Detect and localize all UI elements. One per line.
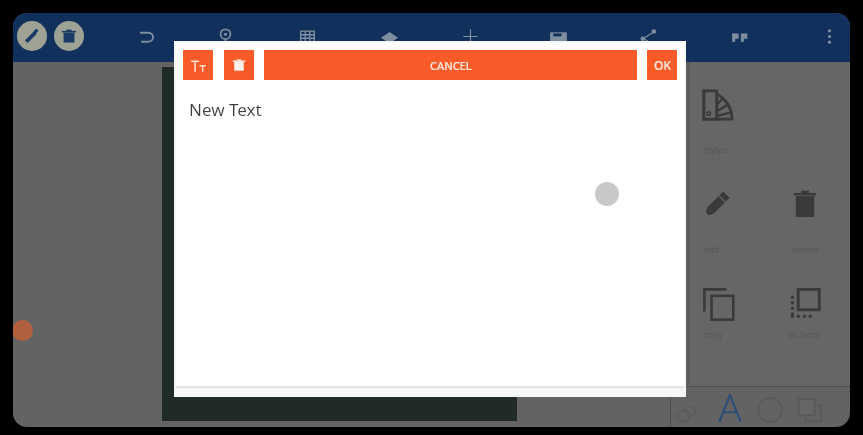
button[interactable]: Share [634,22,662,50]
button[interactable]: CANCEL [264,50,637,80]
staticText: New Text [189,98,262,121]
staticText: copy [703,328,723,340]
staticText: delete [792,243,819,255]
staticText: edit [703,243,720,255]
button[interactable]: Delete tool [54,21,84,51]
button[interactable]: Undo [132,22,160,50]
button[interactable]: Save [544,22,572,50]
staticText: to front [789,328,821,340]
button[interactable]: copy [692,277,776,357]
button[interactable]: Text size [183,50,213,80]
button[interactable]: OK [647,50,677,80]
button[interactable]: delete [781,179,850,259]
staticText: OK [654,57,671,73]
button[interactable]: Text [713,391,747,425]
staticText: styles [703,143,727,155]
button[interactable]: Draw [669,395,705,427]
button[interactable]: Layers [792,392,828,427]
button[interactable]: Grid [293,22,321,50]
button[interactable]: styles [692,79,776,159]
button[interactable]: Quote [726,22,754,50]
button[interactable]: Shape [375,22,403,50]
staticText: CANCEL [430,58,472,73]
button[interactable]: Add [456,22,484,50]
button[interactable]: edit [692,179,776,259]
button[interactable]: to front [778,277,850,357]
button[interactable]: Edit tool [17,21,47,51]
button[interactable]: Location [211,22,239,50]
button[interactable]: More options [815,22,843,50]
button[interactable]: Clear text [224,50,254,80]
